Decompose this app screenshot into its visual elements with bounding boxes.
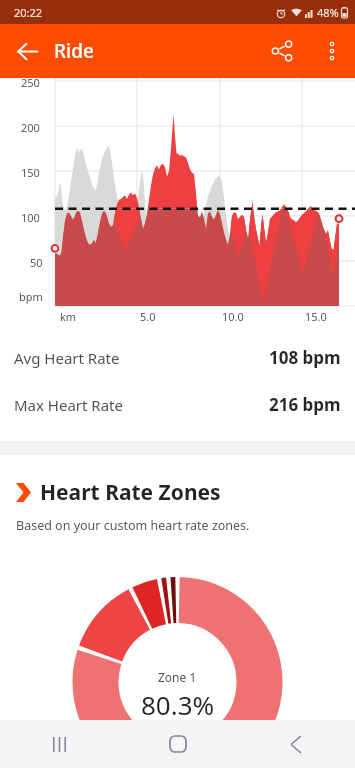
staticText: 50 <box>30 255 43 270</box>
staticText: Max Heart Rate <box>14 395 123 415</box>
staticText: Avg Heart Rate <box>14 348 120 368</box>
staticText: bpm <box>19 289 43 304</box>
staticText: 5.0 <box>140 309 156 324</box>
staticText: 200 <box>21 120 40 135</box>
staticText: 80.3% <box>141 687 215 722</box>
staticText: 20:22 <box>14 5 43 20</box>
staticText: 216 bpm <box>269 393 341 416</box>
staticText: 15.0 <box>305 309 327 324</box>
staticText: 48% <box>317 5 339 20</box>
button[interactable]: Home <box>119 720 237 768</box>
button[interactable]: Recent apps <box>0 720 119 768</box>
button[interactable]: Back <box>237 720 355 768</box>
staticText: 100 <box>21 210 40 225</box>
button[interactable]: Navigate up <box>0 24 54 78</box>
staticText: km <box>60 309 77 324</box>
staticText: Heart Rate Zones <box>40 478 221 507</box>
staticText: 250 <box>21 75 40 90</box>
staticText: 150 <box>21 165 40 180</box>
button[interactable]: Max Heart Rate <box>0 381 355 428</box>
staticText: 108 bpm <box>269 346 341 369</box>
button[interactable]: Share <box>255 24 309 78</box>
staticText: Based on your custom heart rate zones. <box>16 517 250 534</box>
button[interactable]: More options <box>309 28 355 74</box>
staticText: Zone 1 <box>158 669 197 685</box>
button[interactable]: Avg Heart Rate <box>0 334 355 381</box>
staticText: Ride <box>54 38 94 64</box>
staticText: 10.0 <box>222 309 244 324</box>
